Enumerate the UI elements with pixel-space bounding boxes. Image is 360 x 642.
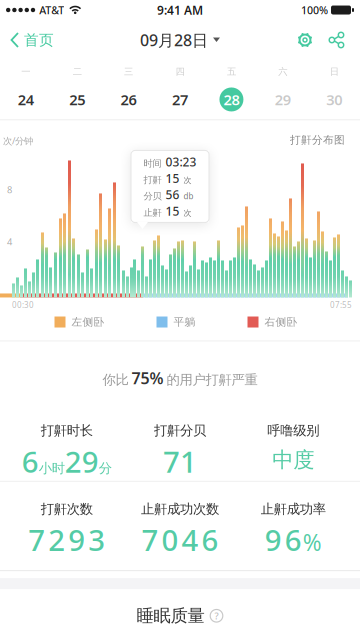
staticText: 6: [22, 442, 39, 481]
staticText: 你比: [102, 371, 128, 388]
button[interactable]: 27: [154, 87, 206, 111]
staticText: 26: [121, 90, 137, 109]
staticText: 睡眠质量: [136, 605, 204, 626]
staticText: 100%: [301, 3, 328, 17]
staticText: 7 2 9 3: [28, 520, 105, 559]
staticText: 27: [172, 90, 188, 109]
button[interactable]: ?: [209, 609, 223, 623]
button[interactable]: 25: [51, 87, 103, 111]
staticText: 平躺: [173, 315, 195, 329]
staticText: 首页: [24, 31, 54, 49]
staticText: 打鼾: [143, 174, 161, 186]
staticText: 8: [7, 183, 12, 196]
staticText: 打鼾分贝: [154, 422, 206, 439]
staticText: 56: [165, 187, 179, 203]
staticText: 打鼾时长: [41, 422, 93, 439]
staticText: 二: [73, 66, 82, 77]
staticText: 六: [278, 66, 287, 77]
staticText: 次: [183, 208, 191, 218]
staticText: 时间: [143, 158, 161, 169]
staticText: 右侧卧: [264, 315, 297, 329]
staticText: 止鼾成功次数: [141, 501, 219, 517]
button[interactable]: 26: [103, 87, 154, 111]
staticText: 29: [65, 442, 99, 481]
staticText: 30: [326, 90, 342, 109]
staticText: db: [183, 191, 193, 201]
button[interactable]: 30: [309, 87, 360, 111]
staticText: 25: [69, 90, 85, 109]
staticText: 小时: [39, 460, 65, 476]
staticText: 打鼾分布图: [290, 133, 345, 147]
staticText: 7 0 4 6: [141, 520, 218, 559]
staticText: 打鼾次数: [41, 501, 93, 517]
staticText: 的用户打鼾严重: [166, 371, 257, 388]
staticText: 一: [21, 66, 30, 77]
button[interactable]: 28: [206, 87, 257, 111]
staticText: 9 6: [265, 520, 302, 559]
staticText: 09月28日: [140, 29, 208, 51]
staticText: 24: [18, 90, 34, 109]
button[interactable]: 24: [0, 87, 51, 111]
staticText: 15: [165, 203, 179, 219]
staticText: 71: [163, 442, 197, 481]
staticText: 四: [175, 66, 184, 77]
staticText: 15: [165, 170, 179, 186]
staticText: 呼噜级别: [267, 422, 319, 439]
staticText: 止鼾: [143, 207, 161, 218]
staticText: 次/分钟: [3, 134, 33, 147]
staticText: 分: [99, 460, 112, 476]
staticText: 次: [183, 175, 191, 185]
staticText: 中度: [272, 447, 314, 473]
staticText: 日: [330, 66, 339, 77]
staticText: 07:55: [330, 299, 352, 310]
staticText: AT&T: [39, 3, 64, 17]
staticText: 止鼾成功率: [261, 501, 326, 517]
button[interactable]: 09月28日: [140, 29, 220, 51]
button[interactable]: 首页: [0, 31, 54, 49]
button[interactable]: 29: [257, 87, 308, 111]
staticText: ?: [214, 610, 218, 622]
staticText: 00:30: [12, 299, 34, 310]
staticText: 03:23: [165, 154, 196, 170]
staticText: 五: [227, 66, 236, 77]
staticText: 分贝: [143, 190, 161, 202]
staticText: 28: [223, 90, 239, 109]
button[interactable]: [319, 32, 360, 48]
staticText: 9:41 AM: [157, 2, 203, 18]
staticText: 75%: [131, 367, 163, 388]
staticText: %: [303, 527, 322, 557]
button[interactable]: [291, 32, 319, 48]
staticText: 左侧卧: [71, 315, 104, 329]
staticText: 29: [275, 90, 291, 109]
staticText: 三: [124, 66, 133, 77]
staticText: 4: [7, 235, 12, 248]
